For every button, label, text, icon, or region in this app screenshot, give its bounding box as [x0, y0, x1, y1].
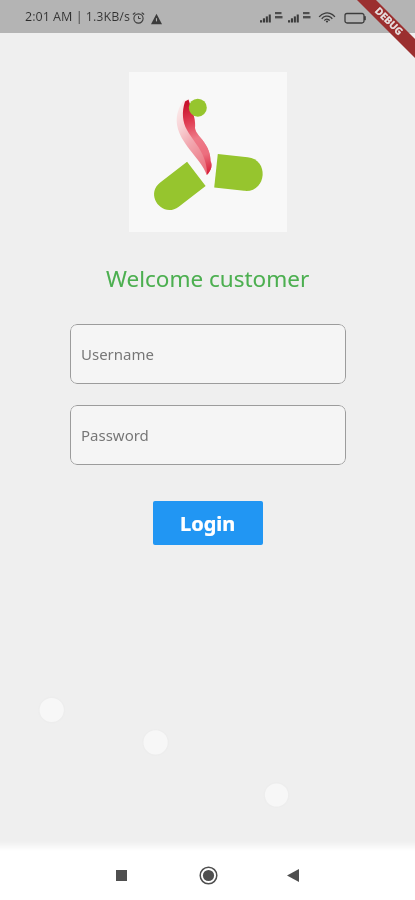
staticText: Username: [81, 344, 154, 364]
button[interactable]: Login: [153, 501, 263, 545]
button[interactable]: Password: [70, 405, 346, 465]
staticText: DEBUG: [372, 4, 407, 38]
button[interactable]: Username: [70, 324, 346, 384]
button[interactable]: Home: [184, 851, 233, 900]
staticText: Password: [81, 425, 149, 445]
staticText: Welcome customer: [106, 263, 310, 294]
button[interactable]: Back: [268, 851, 317, 900]
button[interactable]: Recent apps: [97, 851, 146, 900]
staticText: 2:01 AM | 1.3KB/s: [25, 8, 130, 25]
staticText: Login: [180, 510, 236, 537]
